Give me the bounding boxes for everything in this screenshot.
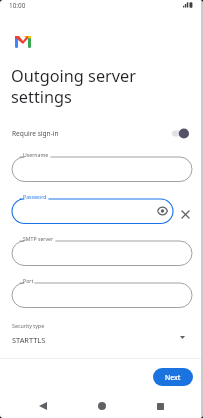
staticText: STARTTLS (12, 335, 46, 345)
button[interactable]: Security type (0, 316, 203, 348)
button[interactable]: Require sign-in (0, 124, 203, 143)
staticText: SMTP server (23, 235, 54, 242)
button[interactable]: SMTP server (12, 234, 192, 266)
button[interactable]: Recent apps (149, 395, 171, 417)
button[interactable]: Next (153, 368, 193, 386)
button[interactable]: Show password (154, 203, 170, 219)
staticText: Username (23, 151, 49, 158)
staticText: 10:00 (9, 1, 26, 10)
button[interactable]: Username (12, 150, 192, 182)
button[interactable]: Port (12, 276, 192, 308)
staticText: Password (23, 193, 47, 200)
button[interactable]: Back (32, 395, 54, 417)
button[interactable]: Home (91, 395, 113, 417)
button[interactable]: Password (12, 192, 173, 224)
staticText: Next (165, 373, 181, 382)
staticText: Security type (12, 322, 45, 329)
button[interactable]: Clear password (177, 206, 193, 222)
button[interactable]: Require sign-in (172, 128, 189, 139)
staticText: Port (23, 277, 34, 284)
staticText: Require sign-in (12, 129, 59, 138)
staticText: Outgoing server settings (11, 65, 151, 107)
